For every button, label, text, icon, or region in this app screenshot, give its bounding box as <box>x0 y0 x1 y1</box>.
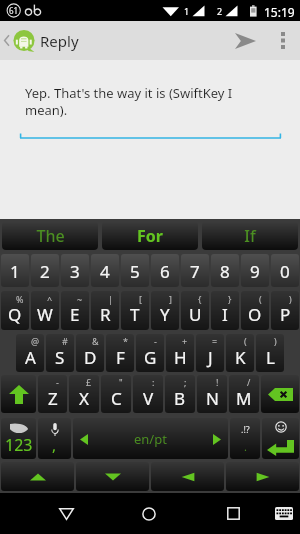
other: Left <box>180 472 196 482</box>
staticText: - <box>56 376 59 388</box>
button[interactable]: # <box>46 334 74 372</box>
button[interactable]: 2 <box>31 254 59 287</box>
button[interactable]: ( <box>241 291 269 330</box>
button[interactable]: 4 <box>91 254 119 287</box>
staticText: C <box>111 387 122 410</box>
staticText: W <box>37 303 53 326</box>
staticText: 2 <box>217 5 223 17</box>
other: Backspace <box>268 388 293 401</box>
button[interactable]: If <box>202 221 298 250</box>
button[interactable]: Reply <box>0 21 79 60</box>
button[interactable]: ) <box>271 291 299 330</box>
button[interactable]: : <box>133 375 163 413</box>
other: Down <box>105 472 121 482</box>
button[interactable]: 7 <box>181 254 209 287</box>
staticText: A <box>25 346 36 369</box>
button[interactable]: Left <box>151 462 224 491</box>
staticText: 61 <box>9 5 19 16</box>
other: Shift <box>9 385 29 404</box>
button[interactable]: Switch keyboard <box>258 493 300 534</box>
button[interactable]: 123 <box>1 418 36 459</box>
button[interactable]: Shift <box>1 375 36 413</box>
button[interactable]: en/pt <box>73 418 228 459</box>
button[interactable]: - <box>38 375 67 413</box>
button[interactable]: - <box>136 334 164 372</box>
button[interactable]: 3 <box>61 254 89 287</box>
staticText: @ <box>31 335 40 347</box>
staticText: ^ <box>47 293 53 305</box>
button[interactable]: ; <box>165 375 195 413</box>
staticText: ) <box>289 293 292 305</box>
staticText: 15:19 <box>264 4 295 20</box>
button[interactable]: Right <box>226 462 299 491</box>
staticText: X <box>79 387 89 410</box>
button[interactable]: ] <box>151 291 179 330</box>
staticText: 7 <box>190 260 200 283</box>
button[interactable]: .!? <box>230 418 260 459</box>
button[interactable]: " <box>101 375 131 413</box>
button[interactable]: 0 <box>271 254 299 287</box>
button[interactable]: % <box>1 291 29 330</box>
button[interactable]: ! <box>197 375 227 413</box>
staticText: en/pt <box>134 430 167 448</box>
staticText: - <box>154 335 157 347</box>
staticText: 8 <box>220 260 230 283</box>
button[interactable]: Back <box>40 493 92 534</box>
button[interactable]: + <box>166 334 194 372</box>
button[interactable]: ^ <box>31 291 59 330</box>
button[interactable]: @ <box>16 334 44 372</box>
staticText: 2 <box>40 260 50 283</box>
staticText: & <box>92 335 99 347</box>
staticText: { <box>198 293 202 305</box>
button[interactable]: 1 <box>1 254 29 287</box>
staticText: Q <box>8 303 22 326</box>
button[interactable]: { <box>181 291 209 330</box>
button[interactable]: Enter <box>262 418 299 459</box>
button[interactable]: The <box>2 221 98 250</box>
button[interactable]: Recents <box>207 493 259 534</box>
button[interactable]: ( <box>226 334 254 372</box>
button[interactable]: } <box>211 291 239 330</box>
staticText: .!? <box>241 423 250 435</box>
button[interactable]: [ <box>121 291 149 330</box>
button[interactable]: , <box>38 418 71 459</box>
button[interactable]: ~ <box>61 291 89 330</box>
staticText: 0 <box>280 260 290 283</box>
button[interactable]: More options <box>266 21 300 60</box>
button[interactable]: * <box>106 334 134 372</box>
button[interactable]: | <box>91 291 119 330</box>
staticText: Reply <box>40 31 79 51</box>
staticText: 6 <box>160 260 170 283</box>
button[interactable]: 9 <box>241 254 269 287</box>
staticText: F <box>116 346 125 369</box>
button[interactable]: Home <box>123 493 175 534</box>
staticText: * <box>123 335 128 347</box>
staticText: S <box>55 346 65 369</box>
button[interactable]: Send <box>224 21 266 60</box>
button[interactable]: 8 <box>211 254 239 287</box>
button[interactable]: Down <box>76 462 149 491</box>
button[interactable]: £ <box>69 375 99 413</box>
staticText: | <box>108 293 113 305</box>
staticText: 5 <box>130 260 140 283</box>
staticText: J <box>208 346 213 369</box>
button[interactable]: 5 <box>121 254 149 287</box>
button[interactable]: / <box>229 375 259 413</box>
staticText: ( <box>244 335 247 347</box>
staticText: I <box>222 303 228 326</box>
button[interactable]: Up <box>1 462 74 491</box>
button[interactable]: = <box>196 334 224 372</box>
staticText: } <box>228 293 232 305</box>
button[interactable]: ) <box>256 334 284 372</box>
staticText: M <box>236 387 252 410</box>
staticText: # <box>62 335 68 347</box>
staticText: T <box>130 303 140 326</box>
button[interactable]: Backspace <box>261 375 299 413</box>
staticText: 9 <box>250 260 260 283</box>
staticText: B <box>174 387 186 410</box>
button[interactable]: For <box>102 221 198 250</box>
button[interactable]: & <box>76 334 104 372</box>
staticText: 1 <box>184 5 190 17</box>
button[interactable]: 6 <box>151 254 179 287</box>
other: Right <box>255 472 271 482</box>
